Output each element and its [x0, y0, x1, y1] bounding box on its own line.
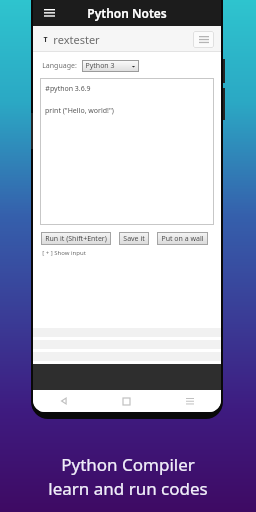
staticText: Run it (Shift+Enter) — [45, 234, 107, 244]
staticText: #python 3.6.9 — [45, 84, 91, 94]
staticText: Put on a wall — [161, 234, 204, 244]
button[interactable]: Open navigation drawer — [39, 3, 59, 23]
button[interactable]: Back — [33, 390, 95, 412]
button[interactable]: Page menu — [193, 31, 214, 48]
staticText: rextester — [53, 32, 100, 47]
button[interactable]: Home — [95, 390, 158, 412]
staticText: Python Notes — [87, 5, 167, 21]
staticText: learn and run codes — [48, 477, 208, 500]
staticText: Save it — [123, 234, 145, 244]
staticText: Language: — [42, 61, 77, 71]
button[interactable]: Run it (Shift+Enter) — [41, 232, 111, 245]
staticText: Python Compiler — [61, 453, 195, 476]
staticText: Python 3 — [85, 61, 115, 71]
button[interactable]: Put on a wall — [157, 232, 208, 245]
button[interactable]: Save it — [119, 232, 149, 245]
button[interactable]: Python 3 — [82, 60, 139, 72]
staticText: [ + ] Show input — [42, 249, 86, 257]
staticText: print ("Hello, world!") — [45, 106, 114, 116]
button[interactable]: Recent apps — [158, 390, 221, 412]
button[interactable]: #python 3.6.9 — [40, 78, 214, 225]
staticText: T — [43, 35, 48, 43]
